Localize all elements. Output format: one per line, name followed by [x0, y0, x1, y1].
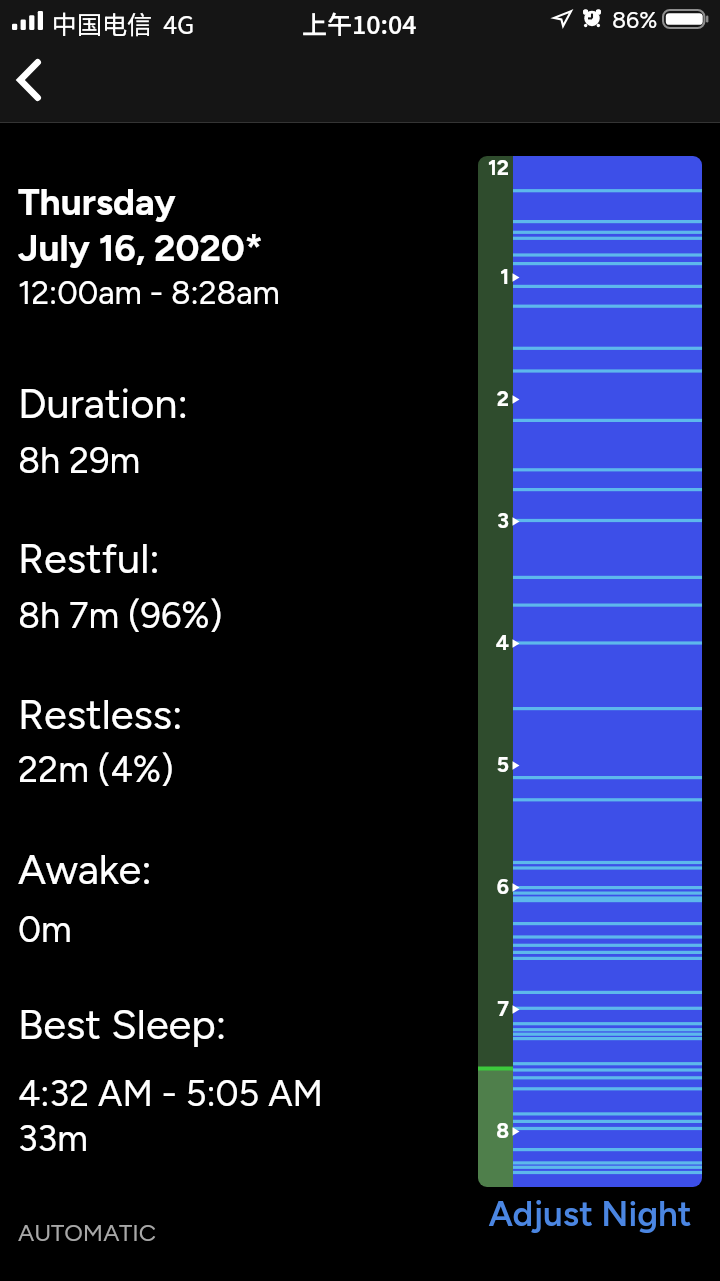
staticText: Thursday: [18, 180, 176, 224]
staticText: 1: [470, 264, 509, 289]
staticText: 上午10:04: [302, 5, 417, 41]
button[interactable]: Adjust Night: [478, 1190, 702, 1238]
staticText: Duration:: [18, 379, 188, 429]
staticText: 8: [470, 1118, 509, 1143]
staticText: Restless:: [18, 690, 183, 740]
staticText: 22m (4%): [18, 748, 174, 791]
staticText: July 16, 2020*: [18, 226, 263, 270]
staticText: 12: [470, 155, 509, 180]
staticText: 2: [470, 386, 509, 411]
staticText: 中国电信 4G: [52, 5, 195, 41]
staticText: AUTOMATIC: [18, 1218, 157, 1247]
staticText: 4: [470, 630, 509, 655]
staticText: 7: [470, 996, 509, 1021]
staticText: 0m: [18, 908, 72, 951]
staticText: Best Sleep:: [18, 1000, 227, 1050]
staticText: 6: [470, 874, 509, 899]
staticText: 8h 29m: [18, 439, 141, 482]
staticText: 3: [470, 508, 509, 533]
staticText: Adjust Night: [478, 1193, 702, 1235]
staticText: Restful:: [18, 534, 160, 584]
button[interactable]: Back: [0, 44, 58, 123]
staticText: 4:32 AM - 5:05 AM: [18, 1072, 323, 1115]
staticText: 12:00am - 8:28am: [18, 274, 280, 312]
staticText: 33m: [18, 1117, 88, 1160]
staticText: 5: [470, 752, 509, 777]
staticText: Awake:: [18, 845, 152, 895]
staticText: 86%: [612, 6, 658, 34]
staticText: 8h 7m (96%): [18, 594, 223, 637]
